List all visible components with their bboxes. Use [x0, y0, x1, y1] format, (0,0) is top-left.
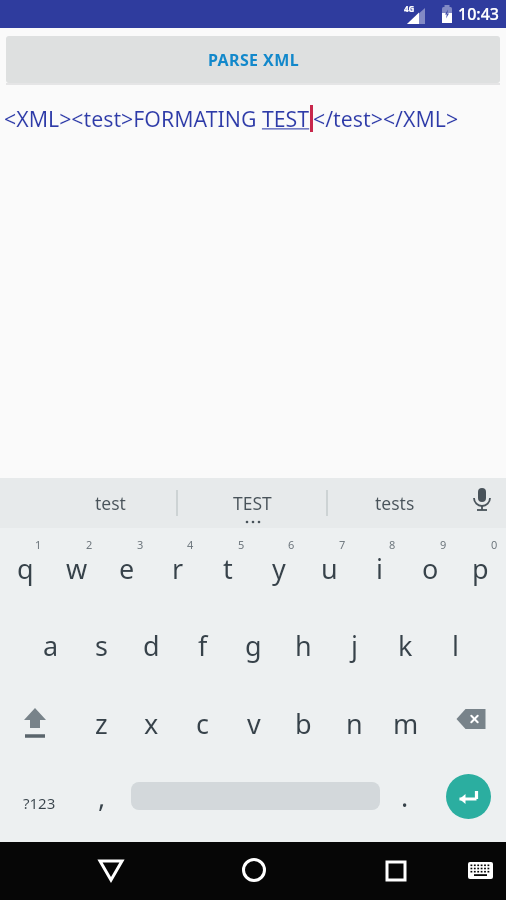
staticText: b: [295, 705, 312, 742]
button[interactable]: f: [177, 606, 228, 684]
button[interactable]: ,: [78, 763, 126, 842]
staticText: y: [272, 550, 286, 587]
staticText: m: [393, 705, 419, 742]
button[interactable]: w: [51, 528, 102, 606]
staticText: h: [295, 627, 312, 664]
button[interactable]: u: [304, 528, 355, 606]
button[interactable]: h: [278, 606, 329, 684]
staticText: a: [43, 627, 59, 664]
button[interactable]: x: [126, 684, 177, 763]
button[interactable]: d: [126, 606, 177, 684]
button[interactable]: e: [101, 528, 152, 606]
staticText: v: [247, 705, 261, 742]
button[interactable]: m: [380, 684, 431, 763]
button[interactable]: TEST: [177, 478, 327, 528]
staticText: n: [346, 705, 363, 742]
staticText: c: [196, 705, 209, 742]
staticText: 3: [137, 537, 144, 552]
button[interactable]: .: [381, 763, 429, 842]
staticText: q: [17, 550, 34, 587]
staticText: x: [144, 705, 159, 742]
button[interactable]: r: [152, 528, 203, 606]
staticText: r: [172, 550, 184, 587]
staticText: 2: [86, 537, 93, 552]
button[interactable]: a: [25, 606, 76, 684]
staticText: PARSE XML: [208, 49, 299, 71]
staticText: 6: [288, 537, 295, 552]
button[interactable]: z: [76, 684, 127, 763]
button[interactable]: k: [380, 606, 431, 684]
button[interactable]: [224, 842, 284, 900]
button[interactable]: c: [177, 684, 228, 763]
staticText: k: [398, 627, 413, 664]
staticText: tests: [375, 491, 415, 515]
button[interactable]: t: [202, 528, 253, 606]
staticText: o: [422, 550, 439, 587]
button[interactable]: [446, 774, 491, 819]
staticText: </test></XML>: [313, 104, 459, 133]
button[interactable]: q: [0, 528, 51, 606]
staticText: e: [119, 550, 135, 587]
staticText: 4: [187, 537, 194, 552]
staticText: f: [198, 627, 208, 664]
staticText: 5: [238, 537, 245, 552]
staticText: ?123: [23, 793, 56, 813]
staticText: <XML><test>FORMATING TEST: [4, 104, 310, 133]
button[interactable]: tests: [327, 478, 463, 528]
staticText: 4G: [404, 3, 415, 14]
button[interactable]: b: [278, 684, 329, 763]
staticText: u: [321, 550, 338, 587]
button[interactable]: PARSE XML: [6, 36, 500, 83]
staticText: 9: [440, 537, 447, 552]
staticText: d: [143, 627, 160, 664]
button[interactable]: test: [43, 478, 177, 528]
staticText: z: [95, 705, 108, 742]
staticText: 7: [339, 537, 346, 552]
staticText: l: [452, 627, 459, 664]
staticText: test: [95, 491, 126, 515]
button[interactable]: j: [329, 606, 380, 684]
button[interactable]: [81, 842, 141, 900]
button[interactable]: [0, 684, 76, 763]
button[interactable]: [366, 842, 426, 900]
staticText: w: [66, 550, 88, 587]
button[interactable]: [430, 684, 506, 763]
staticText: t: [223, 550, 233, 587]
button[interactable]: o: [405, 528, 456, 606]
staticText: s: [95, 627, 108, 664]
button[interactable]: y: [253, 528, 304, 606]
staticText: TEST: [233, 491, 272, 515]
button[interactable]: s: [76, 606, 127, 684]
staticText: i: [376, 550, 383, 587]
staticText: 10:43: [458, 3, 499, 25]
staticText: 0: [491, 537, 498, 552]
button[interactable]: l: [430, 606, 481, 684]
staticText: j: [351, 627, 358, 664]
staticText: ,: [98, 778, 106, 815]
button[interactable]: p: [455, 528, 506, 606]
button[interactable]: g: [228, 606, 279, 684]
staticText: p: [472, 550, 489, 587]
staticText: g: [245, 627, 262, 664]
staticText: .: [401, 778, 409, 815]
button[interactable]: ?123: [1, 763, 78, 842]
button[interactable]: v: [228, 684, 279, 763]
button[interactable]: i: [354, 528, 405, 606]
staticText: 1: [35, 537, 42, 552]
button[interactable]: n: [329, 684, 380, 763]
button[interactable]: [457, 842, 503, 900]
staticText: 8: [389, 537, 396, 552]
